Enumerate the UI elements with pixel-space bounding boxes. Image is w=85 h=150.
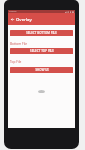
staticText: Bottom File: [10, 42, 28, 46]
button[interactable]: Back: [9, 16, 16, 23]
staticText: SELECT BOTTOM FILE: [26, 31, 57, 35]
button[interactable]: SHOW UI: [10, 67, 73, 73]
staticText: Overlay: [16, 16, 32, 22]
button[interactable]: SELECT BOTTOM FILE: [10, 30, 73, 36]
staticText: Overlay: [9, 10, 17, 13]
staticText: SHOW UI: [35, 68, 49, 72]
button[interactable]: SELECT TOP FILE: [10, 48, 73, 54]
staticText: SELECT TOP FILE: [30, 49, 54, 53]
staticText: Top File: [10, 60, 22, 64]
